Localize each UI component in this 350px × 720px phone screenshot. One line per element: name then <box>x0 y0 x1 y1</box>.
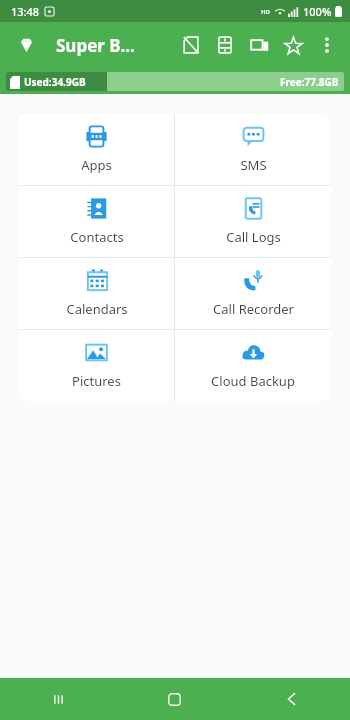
button[interactable]: Cast to device <box>242 22 276 68</box>
button[interactable]: Call Recorder <box>175 258 331 329</box>
staticText: Cloud Backup <box>211 372 295 390</box>
staticText: SMS <box>240 156 267 174</box>
staticText: Calendars <box>66 300 128 318</box>
staticText: Pictures <box>72 372 121 390</box>
button[interactable]: Apps <box>19 114 174 185</box>
button[interactable]: No SIM <box>174 22 208 68</box>
staticText: Call Recorder <box>213 300 294 318</box>
staticText: Call Logs <box>226 228 281 246</box>
staticText: Used:34.9GB <box>24 75 86 89</box>
button[interactable]: Back <box>233 678 350 720</box>
button[interactable]: Home <box>116 678 233 720</box>
button[interactable]: Cloud Backup <box>175 330 331 401</box>
button[interactable]: Pictures <box>19 330 174 401</box>
button[interactable]: Storage <box>208 22 242 68</box>
staticText: 100% <box>303 4 332 19</box>
button[interactable]: Recent apps <box>0 678 116 720</box>
button[interactable]: More options <box>310 22 344 68</box>
button[interactable]: Call Logs <box>175 186 331 257</box>
button[interactable]: Calendars <box>19 258 174 329</box>
button[interactable]: Favourite <box>276 22 310 68</box>
staticText: Super B... <box>56 34 135 57</box>
staticText: Contacts <box>70 228 124 246</box>
staticText: HD <box>261 8 270 16</box>
staticText: Free:77.8GB <box>280 75 339 89</box>
button[interactable]: Contacts <box>19 186 174 257</box>
staticText: 13:48 <box>11 4 40 19</box>
staticText: Apps <box>81 156 112 174</box>
button[interactable]: SMS <box>175 114 331 185</box>
button[interactable]: App logo <box>11 30 41 60</box>
button[interactable]: Used:34.9GB <box>0 68 350 94</box>
